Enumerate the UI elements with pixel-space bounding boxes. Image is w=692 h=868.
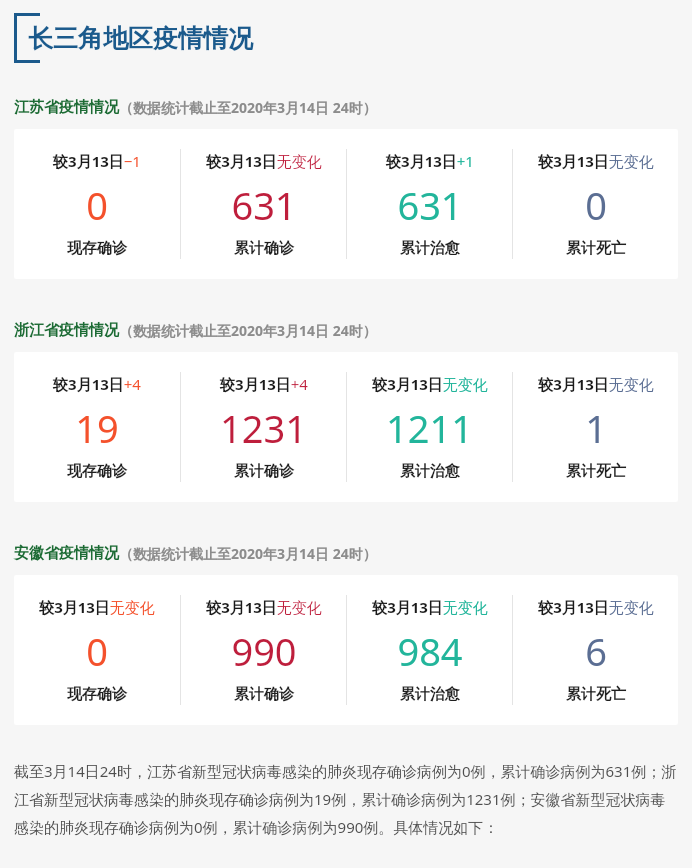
- staticText: 1231: [220, 402, 307, 454]
- button[interactable]: 较3月13日无变化: [14, 575, 678, 725]
- staticText: 较3月13日+4: [53, 374, 141, 394]
- staticText: 较3月13日无变化: [538, 151, 654, 171]
- staticText: 长三角地区疫情情况: [28, 23, 253, 54]
- button[interactable]: 较3月13日−1: [14, 151, 180, 258]
- button[interactable]: 较3月13日无变化: [14, 597, 180, 704]
- button[interactable]: 较3月13日无变化: [347, 374, 512, 481]
- staticText: 1211: [386, 402, 473, 454]
- staticText: 累计确诊: [234, 462, 294, 481]
- staticText: 984: [397, 625, 463, 677]
- button[interactable]: 较3月13日无变化: [181, 151, 346, 258]
- button[interactable]: 较3月13日无变化: [347, 597, 512, 704]
- staticText: 累计治愈: [400, 239, 460, 258]
- staticText: 现存确诊: [67, 239, 127, 258]
- staticText: 累计死亡: [566, 685, 626, 704]
- button[interactable]: 较3月13日无变化: [513, 374, 678, 481]
- staticText: 0: [86, 625, 108, 677]
- staticText: （数据统计截止至2020年3月14日 24时）: [119, 321, 377, 340]
- staticText: 江苏省疫情情况: [14, 98, 119, 117]
- staticText: 浙江省疫情情况: [14, 321, 119, 340]
- staticText: 较3月13日无变化: [206, 151, 322, 171]
- other: 标题装饰: [14, 13, 40, 63]
- staticText: 安徽省疫情情况: [14, 544, 119, 563]
- staticText: 较3月13日+1: [386, 151, 474, 171]
- staticText: 累计死亡: [566, 239, 626, 258]
- button[interactable]: 江苏省疫情情况: [14, 98, 377, 117]
- staticText: 现存确诊: [67, 462, 127, 481]
- staticText: 990: [231, 625, 297, 677]
- staticText: 累计治愈: [400, 685, 460, 704]
- staticText: 0: [86, 179, 108, 231]
- staticText: 1: [585, 402, 607, 454]
- button[interactable]: 较3月13日−1: [14, 129, 678, 279]
- button[interactable]: 较3月13日+4: [14, 352, 678, 502]
- button[interactable]: 较3月13日无变化: [181, 597, 346, 704]
- staticText: （数据统计截止至2020年3月14日 24时）: [119, 98, 377, 117]
- button[interactable]: 安徽省疫情情况: [14, 544, 377, 563]
- staticText: 6: [585, 625, 607, 677]
- staticText: 631: [231, 179, 297, 231]
- staticText: 较3月13日−1: [53, 151, 141, 171]
- button[interactable]: 较3月13日无变化: [513, 597, 678, 704]
- button[interactable]: 较3月13日+1: [347, 151, 512, 258]
- staticText: 累计确诊: [234, 685, 294, 704]
- staticText: 较3月13日无变化: [206, 597, 322, 617]
- staticText: （数据统计截止至2020年3月14日 24时）: [119, 544, 377, 563]
- staticText: 0: [585, 179, 607, 231]
- button[interactable]: 较3月13日+4: [181, 374, 346, 481]
- staticText: 较3月13日无变化: [538, 597, 654, 617]
- staticText: 累计确诊: [234, 239, 294, 258]
- staticText: 19: [75, 402, 119, 454]
- staticText: 累计治愈: [400, 462, 460, 481]
- staticText: 截至3月14日24时，江苏省新型冠状病毒感染的肺炎现存确诊病例为0例，累计确诊病…: [14, 761, 678, 838]
- staticText: 631: [397, 179, 463, 231]
- button[interactable]: 较3月13日无变化: [513, 151, 678, 258]
- staticText: 累计死亡: [566, 462, 626, 481]
- button[interactable]: 较3月13日+4: [14, 374, 180, 481]
- staticText: 较3月13日+4: [220, 374, 308, 394]
- staticText: 较3月13日无变化: [372, 597, 488, 617]
- button[interactable]: 浙江省疫情情况: [14, 321, 377, 340]
- staticText: 较3月13日无变化: [538, 374, 654, 394]
- staticText: 现存确诊: [67, 685, 127, 704]
- staticText: 较3月13日无变化: [372, 374, 488, 394]
- staticText: 较3月13日无变化: [39, 597, 155, 617]
